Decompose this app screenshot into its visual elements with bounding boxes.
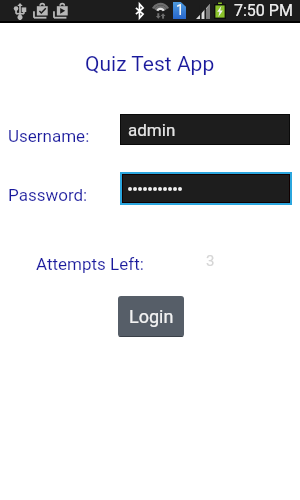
button[interactable]: Login <box>118 296 184 337</box>
staticText: 1 <box>176 2 184 18</box>
staticText: 3 <box>206 252 215 270</box>
staticText: Password: <box>8 185 88 205</box>
button[interactable]: Password input <box>123 175 289 202</box>
staticText: 7:50 PM <box>234 1 293 20</box>
button[interactable]: Username input <box>121 115 289 144</box>
staticText: Login <box>129 306 174 327</box>
staticText: Attempts Left: <box>36 254 144 274</box>
staticText: Quiz Test App <box>85 52 215 77</box>
staticText: admin <box>128 120 176 140</box>
staticText: Username: <box>8 126 90 146</box>
